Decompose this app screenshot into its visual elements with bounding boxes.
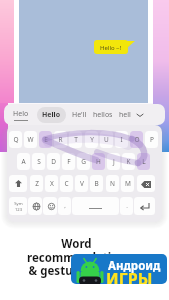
button[interactable]: R	[54, 131, 67, 148]
other: Enter	[140, 203, 149, 210]
button[interactable]: W	[24, 131, 37, 148]
other: Language	[33, 203, 40, 210]
button[interactable]: P	[145, 131, 158, 148]
button[interactable]	[137, 175, 155, 192]
button[interactable]: He'll	[72, 110, 87, 120]
button[interactable]: B	[90, 175, 103, 192]
other: Backspace	[141, 181, 151, 188]
staticText: F	[67, 157, 71, 166]
staticText: L	[142, 157, 146, 166]
staticText: Андроид	[108, 258, 161, 274]
button[interactable]: ,	[58, 197, 71, 215]
button[interactable]: Y	[85, 131, 98, 148]
button[interactable]: Expand suggestions	[136, 111, 144, 119]
button[interactable]: E	[39, 131, 52, 148]
button[interactable]: Sym 123	[9, 197, 27, 215]
staticText: X	[50, 179, 54, 188]
staticText: Y	[90, 135, 94, 144]
button[interactable]: hellos	[93, 110, 113, 120]
other: Shift	[15, 180, 22, 187]
staticText: D	[51, 157, 56, 166]
button[interactable]: V	[75, 175, 88, 192]
button[interactable]: T	[69, 131, 82, 148]
staticText: R	[58, 135, 63, 144]
button[interactable]: G	[77, 153, 90, 170]
staticText: Q	[13, 135, 19, 144]
button[interactable]: .	[120, 197, 133, 215]
button[interactable]: C	[60, 175, 73, 192]
staticText: V	[80, 179, 84, 188]
staticText: T	[74, 135, 78, 144]
button[interactable]	[28, 197, 42, 215]
button[interactable]	[43, 197, 57, 215]
button[interactable]: L	[137, 153, 150, 170]
staticText: C	[64, 179, 69, 188]
staticText: P	[150, 135, 154, 144]
button[interactable]: Helo	[13, 109, 29, 121]
button[interactable]: I	[115, 131, 128, 148]
staticText: O	[134, 135, 140, 144]
button[interactable]: N	[106, 175, 119, 192]
button[interactable]	[72, 197, 119, 215]
button[interactable]: M	[121, 175, 134, 192]
button[interactable]	[134, 197, 155, 215]
staticText: Sym 123	[14, 201, 23, 212]
button[interactable]	[9, 175, 27, 192]
button[interactable]: Q	[9, 131, 22, 148]
staticText: J	[113, 157, 115, 166]
staticText: Helo	[13, 109, 29, 119]
staticText: Word recommendation & gesture typing	[27, 236, 126, 278]
staticText: ,	[64, 202, 66, 210]
staticText: B	[94, 179, 99, 188]
button[interactable]: D	[47, 153, 60, 170]
button[interactable]: Hello	[37, 107, 66, 123]
other: Emoji	[48, 203, 55, 210]
staticText: H	[96, 157, 101, 166]
button[interactable]: X	[45, 175, 58, 192]
button[interactable]: hell	[119, 110, 131, 120]
staticText: S	[37, 157, 41, 166]
staticText: I	[120, 135, 123, 144]
button[interactable]: Z	[30, 175, 43, 192]
staticText: Hello	[42, 110, 61, 120]
button[interactable]: U	[100, 131, 113, 148]
staticText: N	[110, 179, 115, 188]
staticText: Hello ~!	[100, 44, 122, 52]
button[interactable]: K	[122, 153, 135, 170]
staticText: K	[126, 157, 131, 166]
staticText: Z	[35, 179, 39, 188]
staticText: W	[27, 135, 34, 144]
button[interactable]: S	[32, 153, 45, 170]
button[interactable]: H	[92, 153, 105, 170]
staticText: U	[104, 135, 109, 144]
button[interactable]: J	[107, 153, 120, 170]
staticText: ИГРЫ	[106, 268, 153, 284]
staticText: M	[125, 179, 131, 188]
button[interactable]: A	[17, 153, 30, 170]
button[interactable]: F	[62, 153, 75, 170]
staticText: .	[126, 202, 128, 210]
staticText: G	[81, 157, 86, 166]
button[interactable]: O	[130, 131, 143, 148]
staticText: A	[21, 157, 26, 166]
staticText: E	[44, 135, 48, 144]
